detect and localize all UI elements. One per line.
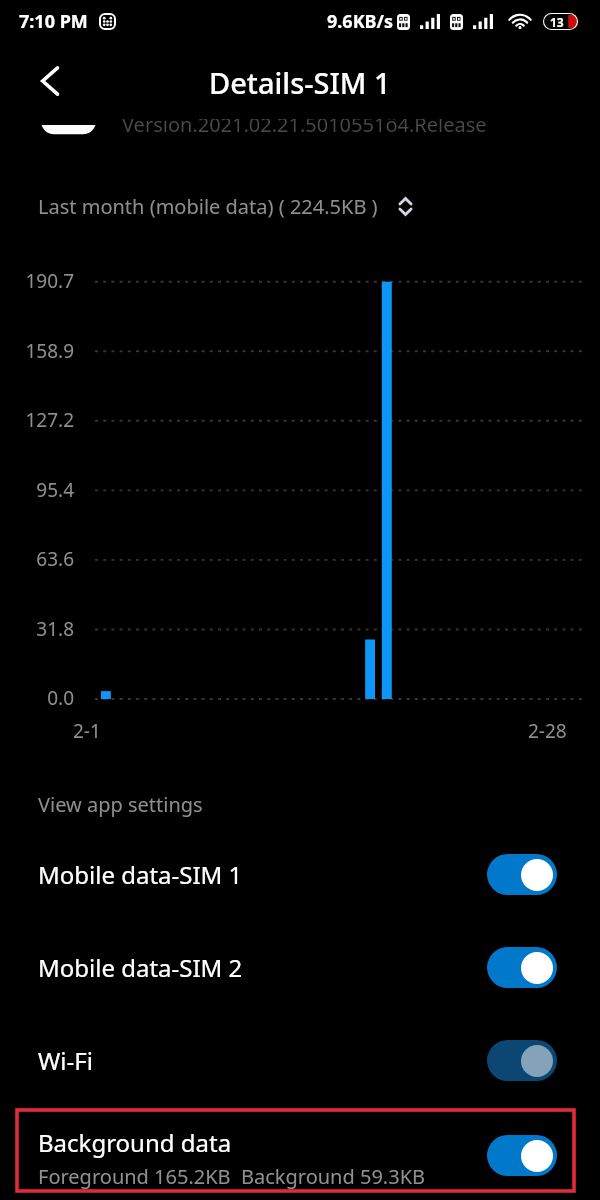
staticText: 95.4	[0, 477, 74, 503]
staticText: 127.2	[0, 407, 74, 433]
staticText: Mobile data-SIM 2	[38, 951, 243, 984]
staticText: Background data	[38, 1126, 232, 1159]
staticText: 2-28	[528, 718, 567, 744]
button[interactable]: Mobile data-SIM 1	[0, 828, 600, 921]
button[interactable]: Back	[27, 59, 71, 103]
staticText: Foreground 165.2KB Background 59.3KB	[38, 1163, 426, 1190]
button[interactable]: Last month (mobile data) ( 224.5KB )	[0, 184, 600, 228]
staticText: Last month (mobile data) ( 224.5KB )	[38, 193, 378, 220]
button[interactable]: Toggle	[487, 1135, 557, 1176]
staticText: 158.9	[0, 338, 74, 364]
staticText: 31.8	[0, 616, 74, 642]
staticText: 2-1	[73, 718, 101, 744]
staticText: 63.6	[0, 546, 74, 572]
button[interactable]: Mobile data-SIM 2	[0, 921, 600, 1014]
staticText: View app settings	[38, 791, 203, 818]
button[interactable]: Toggle	[487, 1040, 557, 1081]
staticText: 0.0	[0, 685, 74, 711]
staticText: 7:10 PM	[19, 9, 88, 34]
button[interactable]: Toggle	[487, 854, 557, 895]
staticText: Version.2021.02.21.5010551ô4.Release	[122, 111, 487, 138]
staticText: Details-SIM 1	[209, 63, 391, 102]
staticText: Wi-Fi	[38, 1044, 93, 1077]
button[interactable]: Background data	[0, 1107, 600, 1200]
staticText: Mobile data-SIM 1	[38, 858, 243, 891]
staticText: 9.6KB/s	[327, 9, 394, 34]
button[interactable]: Wi-Fi	[0, 1014, 600, 1107]
staticText: 13	[550, 14, 564, 30]
button[interactable]: Toggle	[487, 947, 557, 988]
staticText: 190.7	[0, 268, 74, 294]
